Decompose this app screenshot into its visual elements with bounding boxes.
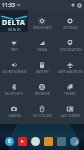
staticText: DELTA OS (8, 28, 21, 32)
button[interactable]: THEMES (56, 76, 84, 98)
staticText: S (8, 138, 11, 145)
button[interactable]: BATTERY (28, 54, 56, 76)
staticText: DELTA (2, 18, 26, 28)
button[interactable]: SETTINGS (56, 10, 84, 32)
button[interactable]: SIGNAL (28, 32, 56, 54)
staticText: CAMERA (8, 114, 21, 118)
button[interactable]: Play Store (57, 137, 66, 146)
button[interactable]: BLUETOOTH (0, 76, 28, 98)
staticText: THEMES (64, 92, 76, 96)
staticText: WIFI (11, 48, 18, 52)
button[interactable]: CAMERA (0, 98, 28, 120)
staticText: LAST SCREEN (60, 114, 80, 118)
staticText: BROWSER (35, 92, 50, 96)
button[interactable]: LAST SCREEN (56, 98, 84, 120)
staticText: GO TO SLEEP (33, 114, 52, 118)
staticText: BRIGHTNESS (33, 26, 52, 30)
staticText: AIRPLANE MODE (58, 70, 83, 74)
staticText: GPS/LOCATION (59, 48, 82, 52)
staticText: BLUETOOTH (5, 92, 23, 96)
button[interactable]: SOUND/VIBRATE (0, 54, 28, 76)
staticText: 11:33 (2, 2, 15, 9)
staticText: SETTINGS (63, 26, 78, 30)
button[interactable]: BROWSER (28, 76, 56, 98)
button[interactable]: Files (44, 137, 53, 146)
button[interactable]: WIFI (0, 32, 28, 54)
button[interactable]: YouTube (18, 137, 27, 146)
staticText: SIGNAL (37, 48, 48, 52)
staticText: SOUND/VIBRATE (2, 70, 27, 74)
staticText: BATTERY (36, 70, 49, 74)
button[interactable]: Delta OS (0, 10, 28, 32)
button[interactable]: Gallery (31, 137, 40, 146)
button[interactable]: GO TO SLEEP (28, 98, 56, 120)
button[interactable]: AIRPLANE MODE (56, 54, 84, 76)
button[interactable]: Skype (5, 137, 14, 146)
button[interactable]: BRIGHTNESS (28, 10, 56, 32)
button[interactable]: GPS/LOCATION (56, 32, 84, 54)
button[interactable]: Chrome (70, 137, 79, 146)
